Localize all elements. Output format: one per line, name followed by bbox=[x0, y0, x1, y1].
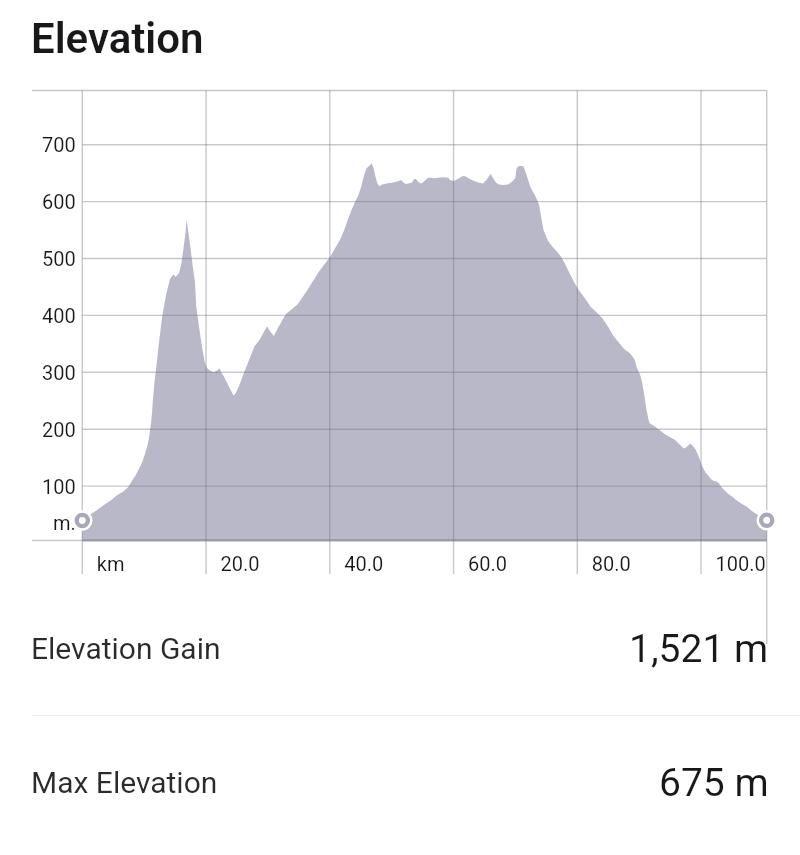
button[interactable]: Max Elevation bbox=[0, 716, 800, 849]
button[interactable]: Elevation Gain bbox=[0, 582, 800, 715]
staticText: Elevation Gain bbox=[31, 631, 221, 666]
staticText: Max Elevation bbox=[31, 765, 218, 800]
staticText: Elevation bbox=[31, 14, 204, 63]
other: Elevation profile chart bbox=[0, 70, 800, 582]
staticText: 1,521 m bbox=[629, 626, 769, 672]
staticText: 675 m bbox=[659, 760, 769, 806]
